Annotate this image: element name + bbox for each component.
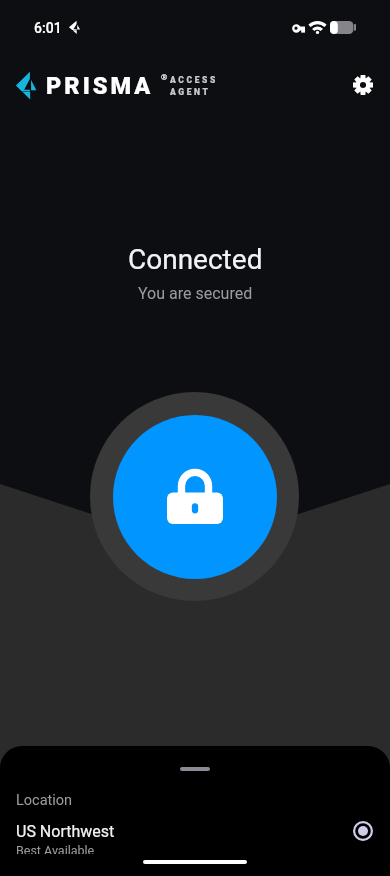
staticText: ®: [161, 73, 168, 82]
staticText: PRISMA: [46, 72, 154, 100]
button[interactable]: Settings: [342, 64, 384, 106]
button[interactable]: Disconnect VPN: [90, 392, 299, 601]
staticText: Location: [16, 792, 73, 809]
staticText: Connected: [128, 243, 263, 276]
button[interactable]: Location: [0, 792, 390, 854]
staticText: You are secured: [138, 284, 253, 303]
staticText: ACCESS: [170, 75, 218, 85]
staticText: Best Available: [16, 843, 95, 854]
staticText: US Northwest: [16, 822, 115, 841]
staticText: AGENT: [170, 87, 211, 97]
staticText: 6:01: [34, 20, 62, 36]
